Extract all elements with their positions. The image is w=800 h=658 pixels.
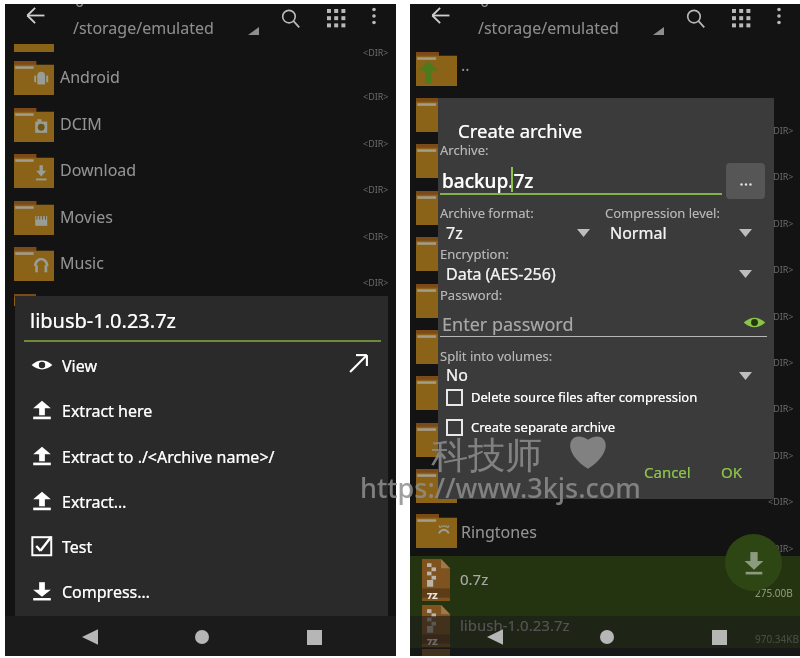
button[interactable]: Delete source files after compression xyxy=(447,386,698,408)
staticText: 0 xyxy=(75,4,85,12)
button[interactable]: Search xyxy=(677,4,713,36)
staticText: libush-1.0.23.7z xyxy=(460,615,570,635)
staticText: <DIR> xyxy=(768,170,794,182)
staticText: Extract here xyxy=(62,400,153,422)
staticText: <DIR> xyxy=(768,217,794,229)
staticText: Download xyxy=(60,159,137,181)
staticText: 科技师 xyxy=(431,432,542,479)
staticText: Movies xyxy=(60,206,113,228)
staticText: backup.7z xyxy=(442,168,534,194)
staticText: Cancel xyxy=(644,462,691,482)
staticText: 275.00B xyxy=(755,586,793,600)
staticText: Test xyxy=(62,536,93,558)
button[interactable]: .. xyxy=(410,48,800,94)
button[interactable]: Music xyxy=(5,243,396,289)
staticText: 0 xyxy=(480,4,490,12)
button[interactable]: Back xyxy=(73,620,107,654)
staticText: <DIR> xyxy=(768,310,794,322)
staticText: 7z xyxy=(446,222,463,244)
staticText: 0.7z xyxy=(460,569,489,589)
button[interactable]: Home xyxy=(590,620,624,654)
staticText: Delete source files after compression xyxy=(471,388,698,406)
button[interactable]: Test xyxy=(15,530,388,575)
button[interactable]: DCIM xyxy=(5,104,396,150)
staticText: https://www.3kjs.com xyxy=(360,469,641,506)
button[interactable]: Extract… xyxy=(15,485,388,530)
button[interactable]: Android xyxy=(5,57,396,103)
staticText: <DIR> xyxy=(768,542,794,554)
button[interactable]: Home xyxy=(185,620,219,654)
staticText: Create separate archive xyxy=(471,418,615,436)
staticText: 7Z xyxy=(427,589,438,601)
staticText: DCIM xyxy=(60,113,102,135)
button[interactable]: Extract xyxy=(725,534,782,591)
staticText: Normal xyxy=(610,222,667,244)
button[interactable]: Browse xyxy=(726,163,765,199)
staticText: <DIR> xyxy=(768,124,794,136)
button[interactable]: Create separate archive xyxy=(447,416,615,438)
button[interactable]: Change view xyxy=(723,4,759,36)
button[interactable]: Movies xyxy=(5,197,396,243)
button[interactable]: Download xyxy=(5,150,396,196)
staticText: Music xyxy=(60,252,104,274)
staticText: Archive: xyxy=(440,141,489,159)
staticText: OK xyxy=(721,462,743,482)
staticText: /storage/emulated xyxy=(478,17,619,39)
button[interactable]: Back xyxy=(421,4,459,34)
button[interactable]: Extract here xyxy=(15,394,388,439)
staticText: Password: xyxy=(440,286,503,304)
button[interactable]: Compress… xyxy=(15,575,388,620)
staticText: Split into volumes: xyxy=(440,347,553,365)
staticText: <DIR> xyxy=(363,230,389,242)
staticText: .. xyxy=(461,54,470,76)
staticText: libusb-1.0.23.7z xyxy=(30,307,176,334)
staticText: Archive format: xyxy=(440,204,534,222)
staticText: Ringtones xyxy=(461,521,537,543)
staticText: <DIR> xyxy=(363,90,389,102)
staticText: Extract to ./<Archive name>/ xyxy=(62,446,275,468)
staticText: Create archive xyxy=(458,118,583,143)
staticText: No xyxy=(446,364,468,386)
staticText: Android xyxy=(60,66,120,88)
button[interactable]: Ringtones xyxy=(410,510,800,556)
staticText: <DIR> xyxy=(363,46,389,58)
staticText: View xyxy=(62,355,98,377)
button[interactable]: Change view xyxy=(318,4,354,36)
staticText: 7Z xyxy=(427,635,438,647)
staticText: Compression level: xyxy=(605,204,720,222)
staticText: <DIR> xyxy=(768,402,794,414)
staticText: <DIR> xyxy=(768,356,794,368)
button[interactable]: Back xyxy=(478,620,512,654)
button[interactable]: 7Z xyxy=(410,556,800,602)
staticText: Encryption: xyxy=(440,245,509,263)
staticText: <DIR> xyxy=(768,495,794,507)
button[interactable]: More options xyxy=(358,4,390,32)
staticText: <DIR> xyxy=(363,276,389,288)
staticText: 970.34KB xyxy=(755,632,799,646)
staticText: Enter password xyxy=(442,312,574,337)
staticText: /storage/emulated xyxy=(73,17,214,39)
button[interactable]: OK xyxy=(713,458,751,486)
button[interactable]: Cancel xyxy=(641,458,693,486)
staticText: <DIR> xyxy=(768,263,794,275)
button[interactable]: Extract to ./<Archive name>/ xyxy=(15,440,388,485)
button[interactable]: Recent apps xyxy=(702,620,736,654)
button[interactable]: Recent apps xyxy=(297,620,331,654)
button[interactable]: Back xyxy=(16,4,54,34)
button[interactable]: 7Z xyxy=(410,602,800,648)
staticText: Compress… xyxy=(62,581,150,603)
button[interactable]: View xyxy=(15,349,388,394)
button[interactable]: Search xyxy=(272,4,308,36)
staticText: <DIR> xyxy=(768,449,794,461)
staticText: <DIR> xyxy=(363,137,389,149)
staticText: <DIR> xyxy=(363,183,389,195)
staticText: Data (AES-256) xyxy=(446,263,556,285)
staticText: Extract… xyxy=(62,491,127,513)
button[interactable]: More options xyxy=(763,4,795,32)
